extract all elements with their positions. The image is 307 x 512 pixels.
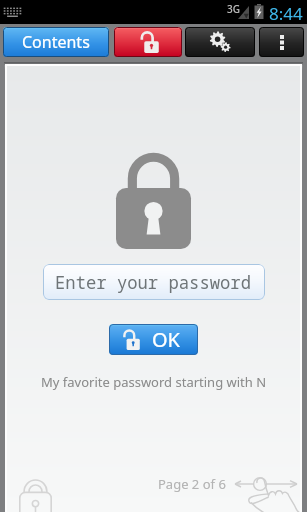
staticText: 8:44 <box>269 2 303 25</box>
staticText: Contents <box>22 31 90 53</box>
button[interactable]: More options <box>259 27 304 57</box>
button[interactable]: Contents <box>3 27 109 57</box>
other: Keyboard <box>3 7 22 18</box>
button[interactable]: Settings <box>185 27 255 57</box>
staticText: OK <box>152 326 180 353</box>
button[interactable]: OK <box>109 324 198 355</box>
button[interactable]: Unlock <box>114 27 182 57</box>
staticText: Enter your password <box>55 271 251 294</box>
button[interactable]: Enter your password <box>43 264 265 300</box>
staticText: 3G <box>227 2 240 16</box>
staticText: Page 2 of 6 <box>158 475 226 493</box>
staticText: My favorite password starting with N <box>41 373 267 391</box>
